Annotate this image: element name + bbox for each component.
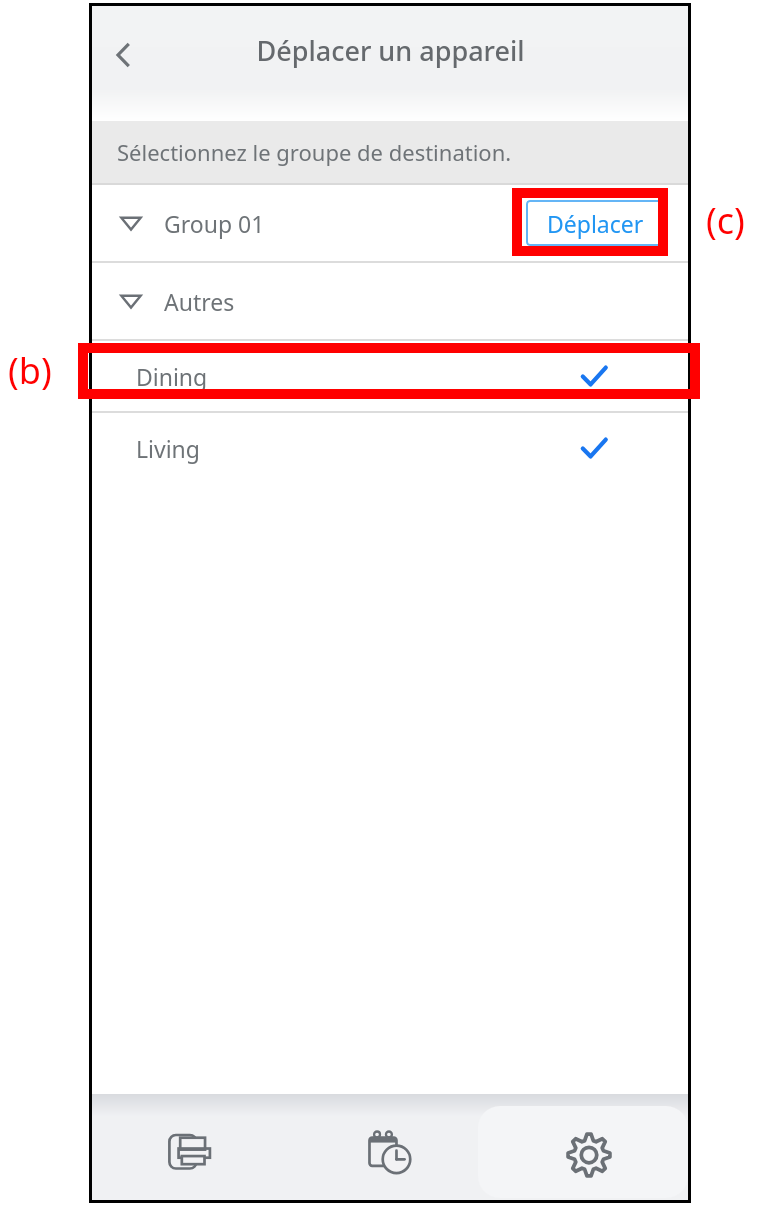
button[interactable]: Déplacer: [526, 200, 664, 246]
staticText: (c): [706, 196, 745, 245]
staticText: (b): [8, 346, 52, 395]
button[interactable]: Back: [92, 23, 156, 87]
button[interactable]: Autres: [92, 263, 688, 339]
staticText: Group 01: [164, 208, 265, 239]
staticText: Living: [136, 433, 200, 464]
button[interactable]: Devices: [92, 1096, 290, 1206]
staticText: Déplacer: [547, 208, 644, 239]
staticText: Dining: [136, 361, 208, 392]
button[interactable]: Living: [92, 413, 688, 483]
button[interactable]: Settings: [489, 1096, 688, 1206]
button[interactable]: Schedule: [290, 1096, 489, 1206]
staticText: Autres: [164, 286, 235, 317]
staticText: Sélectionnez le groupe de destination.: [117, 137, 512, 167]
button[interactable]: Group 01: [92, 185, 688, 261]
button[interactable]: Dining: [92, 341, 688, 411]
staticText: Déplacer un appareil: [256, 32, 525, 69]
